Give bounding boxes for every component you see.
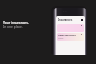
staticText: In one place.: [3, 25, 23, 29]
button[interactable]: Insurances: [57, 18, 84, 22]
button[interactable]: [57, 24, 84, 32]
staticText: Your insurances.: [3, 21, 29, 25]
staticText: Home insurance: [58, 34, 76, 37]
button[interactable]: Home insurance: [57, 33, 84, 41]
staticText: Insurances: [58, 18, 73, 22]
staticText: Active: [58, 37, 64, 40]
button[interactable]: Profile: [81, 19, 83, 21]
